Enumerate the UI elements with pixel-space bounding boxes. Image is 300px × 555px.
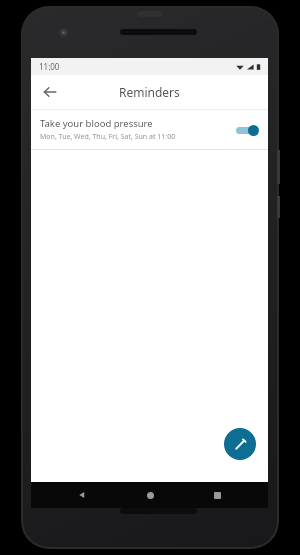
staticText: Reminders <box>119 84 180 100</box>
button[interactable]: Recent apps <box>208 486 226 504</box>
staticText: Take your blood pressure <box>40 117 153 130</box>
button[interactable]: Add reminder <box>224 428 256 460</box>
button[interactable]: Home <box>141 486 159 504</box>
button[interactable]: Take your blood pressure <box>31 110 268 149</box>
button[interactable]: Back <box>73 486 91 504</box>
button[interactable]: Toggle reminder <box>233 122 259 138</box>
staticText: Mon, Tue, Wed, Thu, Fri, Sat, Sun at 11:… <box>40 132 176 142</box>
button[interactable]: Back <box>35 77 65 107</box>
staticText: 11:00 <box>39 61 60 72</box>
